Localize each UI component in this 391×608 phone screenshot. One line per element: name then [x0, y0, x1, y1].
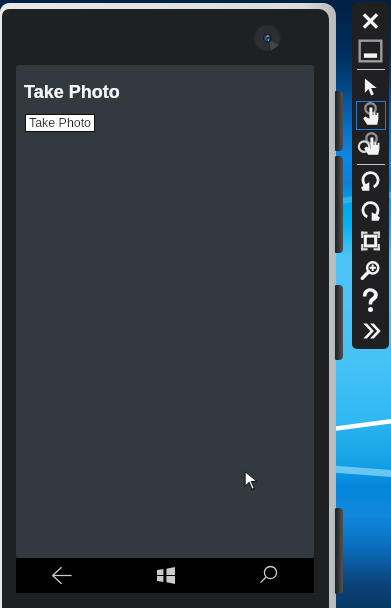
button[interactable]: Multi touch input — [352, 131, 389, 161]
button[interactable]: Back — [14, 558, 110, 593]
button[interactable]: Search — [221, 558, 314, 593]
button[interactable]: Minimize — [352, 36, 389, 66]
button[interactable]: Single touch input — [357, 102, 385, 129]
button[interactable]: Rotate right — [352, 198, 389, 226]
button[interactable]: Help — [352, 287, 389, 315]
button[interactable]: Pointer — [352, 74, 389, 100]
staticText: Take Photo — [24, 82, 120, 102]
button[interactable]: Close — [352, 6, 389, 36]
button[interactable]: Zoom — [352, 257, 389, 283]
button[interactable]: More — [352, 320, 389, 342]
button[interactable]: Rotate left — [352, 168, 389, 196]
staticText: Take Photo — [29, 116, 91, 130]
button[interactable]: Start — [117, 558, 214, 593]
button[interactable]: Fit to screen — [352, 228, 389, 254]
button[interactable]: Take Photo — [26, 115, 94, 131]
